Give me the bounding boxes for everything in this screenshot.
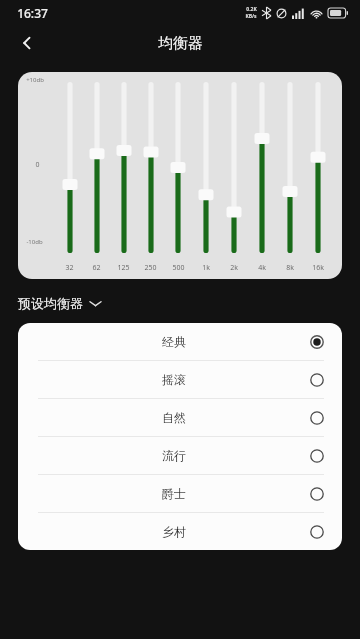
- button[interactable]: [251, 82, 273, 261]
- staticText: 流行: [38, 448, 310, 463]
- staticText: +10db: [26, 76, 44, 84]
- button[interactable]: 流行: [18, 437, 342, 474]
- button[interactable]: [167, 82, 189, 261]
- staticText: 16:37: [17, 5, 48, 21]
- staticText: 16k: [312, 263, 324, 273]
- button[interactable]: [140, 82, 162, 261]
- staticText: 爵士: [38, 486, 310, 501]
- button[interactable]: 自然: [18, 399, 342, 436]
- staticText: KB/s: [245, 13, 257, 20]
- button[interactable]: [86, 82, 108, 261]
- staticText: 0.2K: [246, 6, 257, 13]
- button[interactable]: [223, 82, 245, 261]
- staticText: 125: [117, 263, 130, 273]
- staticText: 500: [172, 263, 185, 273]
- button[interactable]: 乡村: [18, 513, 342, 550]
- staticText: -10db: [26, 238, 43, 246]
- staticText: 8k: [286, 263, 294, 273]
- button[interactable]: 爵士: [18, 475, 342, 512]
- staticText: 2k: [230, 263, 238, 273]
- staticText: 均衡器: [158, 34, 203, 53]
- button[interactable]: [113, 82, 135, 261]
- staticText: 1k: [202, 263, 210, 273]
- staticText: 0: [35, 160, 40, 170]
- button[interactable]: Back: [8, 26, 46, 60]
- button[interactable]: [195, 82, 217, 261]
- button[interactable]: [307, 82, 329, 261]
- button[interactable]: [279, 82, 301, 261]
- staticText: 自然: [38, 410, 310, 425]
- staticText: 预设均衡器: [18, 295, 83, 311]
- button[interactable]: [59, 82, 81, 261]
- staticText: 乡村: [38, 524, 310, 539]
- staticText: 62: [92, 263, 101, 273]
- staticText: 经典: [38, 334, 310, 349]
- button[interactable]: 摇滚: [18, 361, 342, 398]
- staticText: 32: [65, 263, 74, 273]
- staticText: 摇滚: [38, 372, 310, 387]
- button[interactable]: 经典: [18, 323, 342, 360]
- staticText: 250: [144, 263, 157, 273]
- staticText: 4k: [258, 263, 266, 273]
- button[interactable]: 预设均衡器: [18, 295, 360, 311]
